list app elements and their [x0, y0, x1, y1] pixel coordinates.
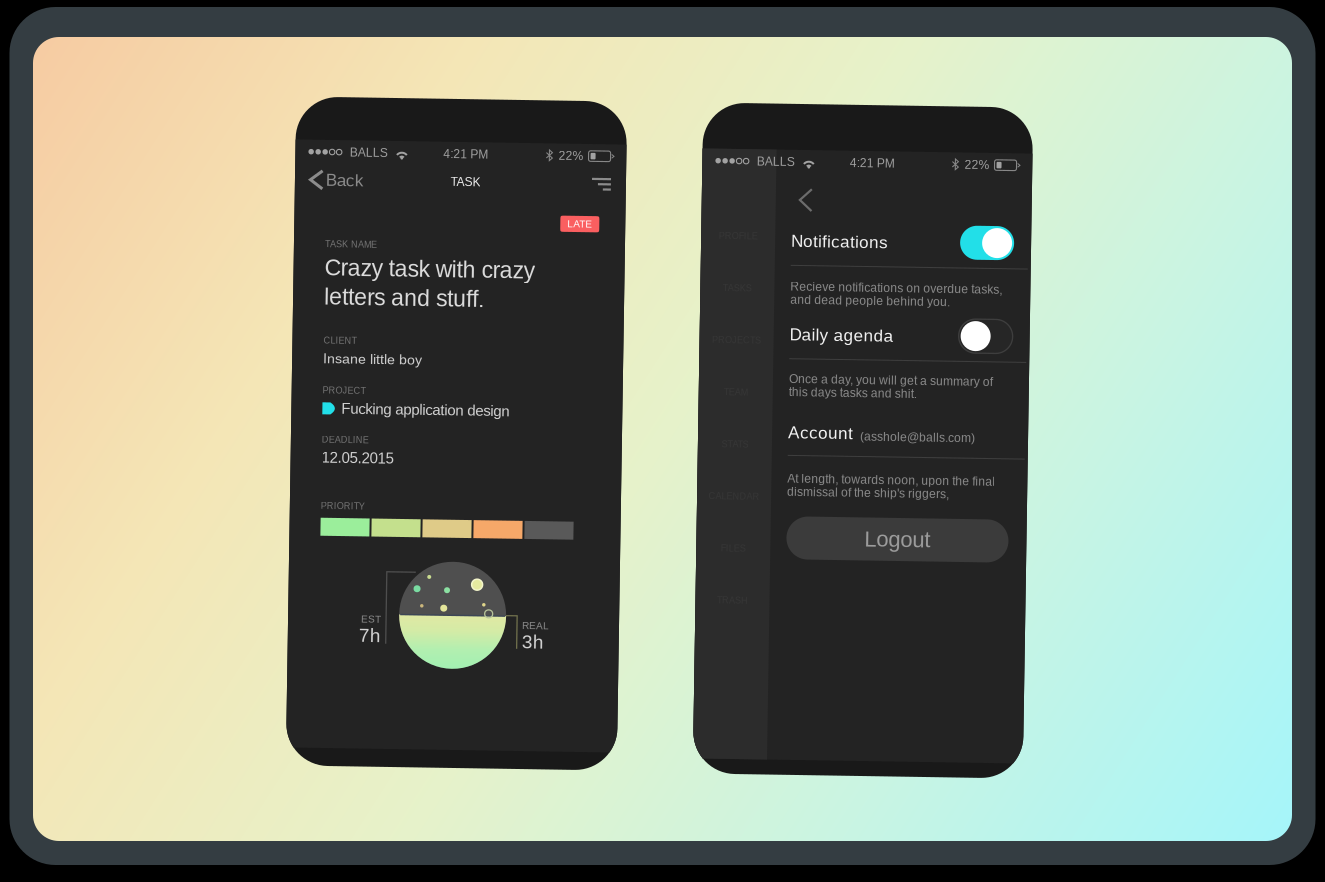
staticText: 22%	[554, 147, 579, 161]
staticText: PROJECT	[322, 387, 365, 397]
staticText: BALLS	[345, 147, 383, 161]
staticText: Notifications	[788, 232, 885, 252]
staticText: BALLS	[752, 156, 790, 170]
button[interactable]: Logout	[788, 517, 1010, 560]
button[interactable]: Filter list	[578, 166, 622, 198]
staticText: Insane little boy	[322, 352, 421, 368]
staticText: 3h	[525, 630, 547, 651]
staticText: Crazy task with crazy	[322, 257, 532, 282]
button[interactable]: Back	[291, 166, 368, 198]
staticText: REAL	[525, 619, 552, 630]
staticText: PRIORITY	[322, 503, 366, 513]
button[interactable]: Notifications	[957, 224, 1011, 258]
staticText: TASK NAME	[322, 241, 374, 251]
staticText: 22%	[960, 156, 985, 170]
staticText: Recieve notifications on overdue tasks,	[788, 281, 1000, 294]
button[interactable]: Back	[775, 181, 821, 221]
staticText: EST	[364, 615, 384, 626]
staticText: letters and stuff.	[322, 286, 482, 311]
staticText: 4:21 PM	[439, 147, 484, 161]
staticText: Back	[322, 172, 360, 191]
staticText: DEADLINE	[322, 436, 369, 447]
staticText: this days tasks and shit.	[788, 386, 916, 400]
staticText: Daily agenda	[788, 326, 892, 345]
staticText: TASK	[446, 176, 476, 188]
button[interactable]: Daily agenda	[957, 317, 1011, 351]
staticText: Fucking application design	[341, 402, 509, 418]
staticText: 12.05.2015	[322, 452, 394, 468]
staticText: CLIENT	[322, 337, 355, 347]
staticText: At length, towards noon, upon the final	[788, 473, 996, 486]
staticText: and dead people behind you.	[788, 294, 948, 307]
staticText: dismissal of the ship's riggers,	[788, 486, 950, 499]
staticText: (asshole@balls.com)	[860, 430, 975, 443]
staticText: 7h	[362, 626, 384, 647]
staticText: Logout	[866, 527, 932, 551]
staticText: Once a day, you will get a summary of	[788, 373, 992, 387]
staticText: 4:21 PM	[845, 156, 890, 170]
staticText: LATE	[564, 216, 589, 228]
staticText: Account	[788, 424, 853, 443]
